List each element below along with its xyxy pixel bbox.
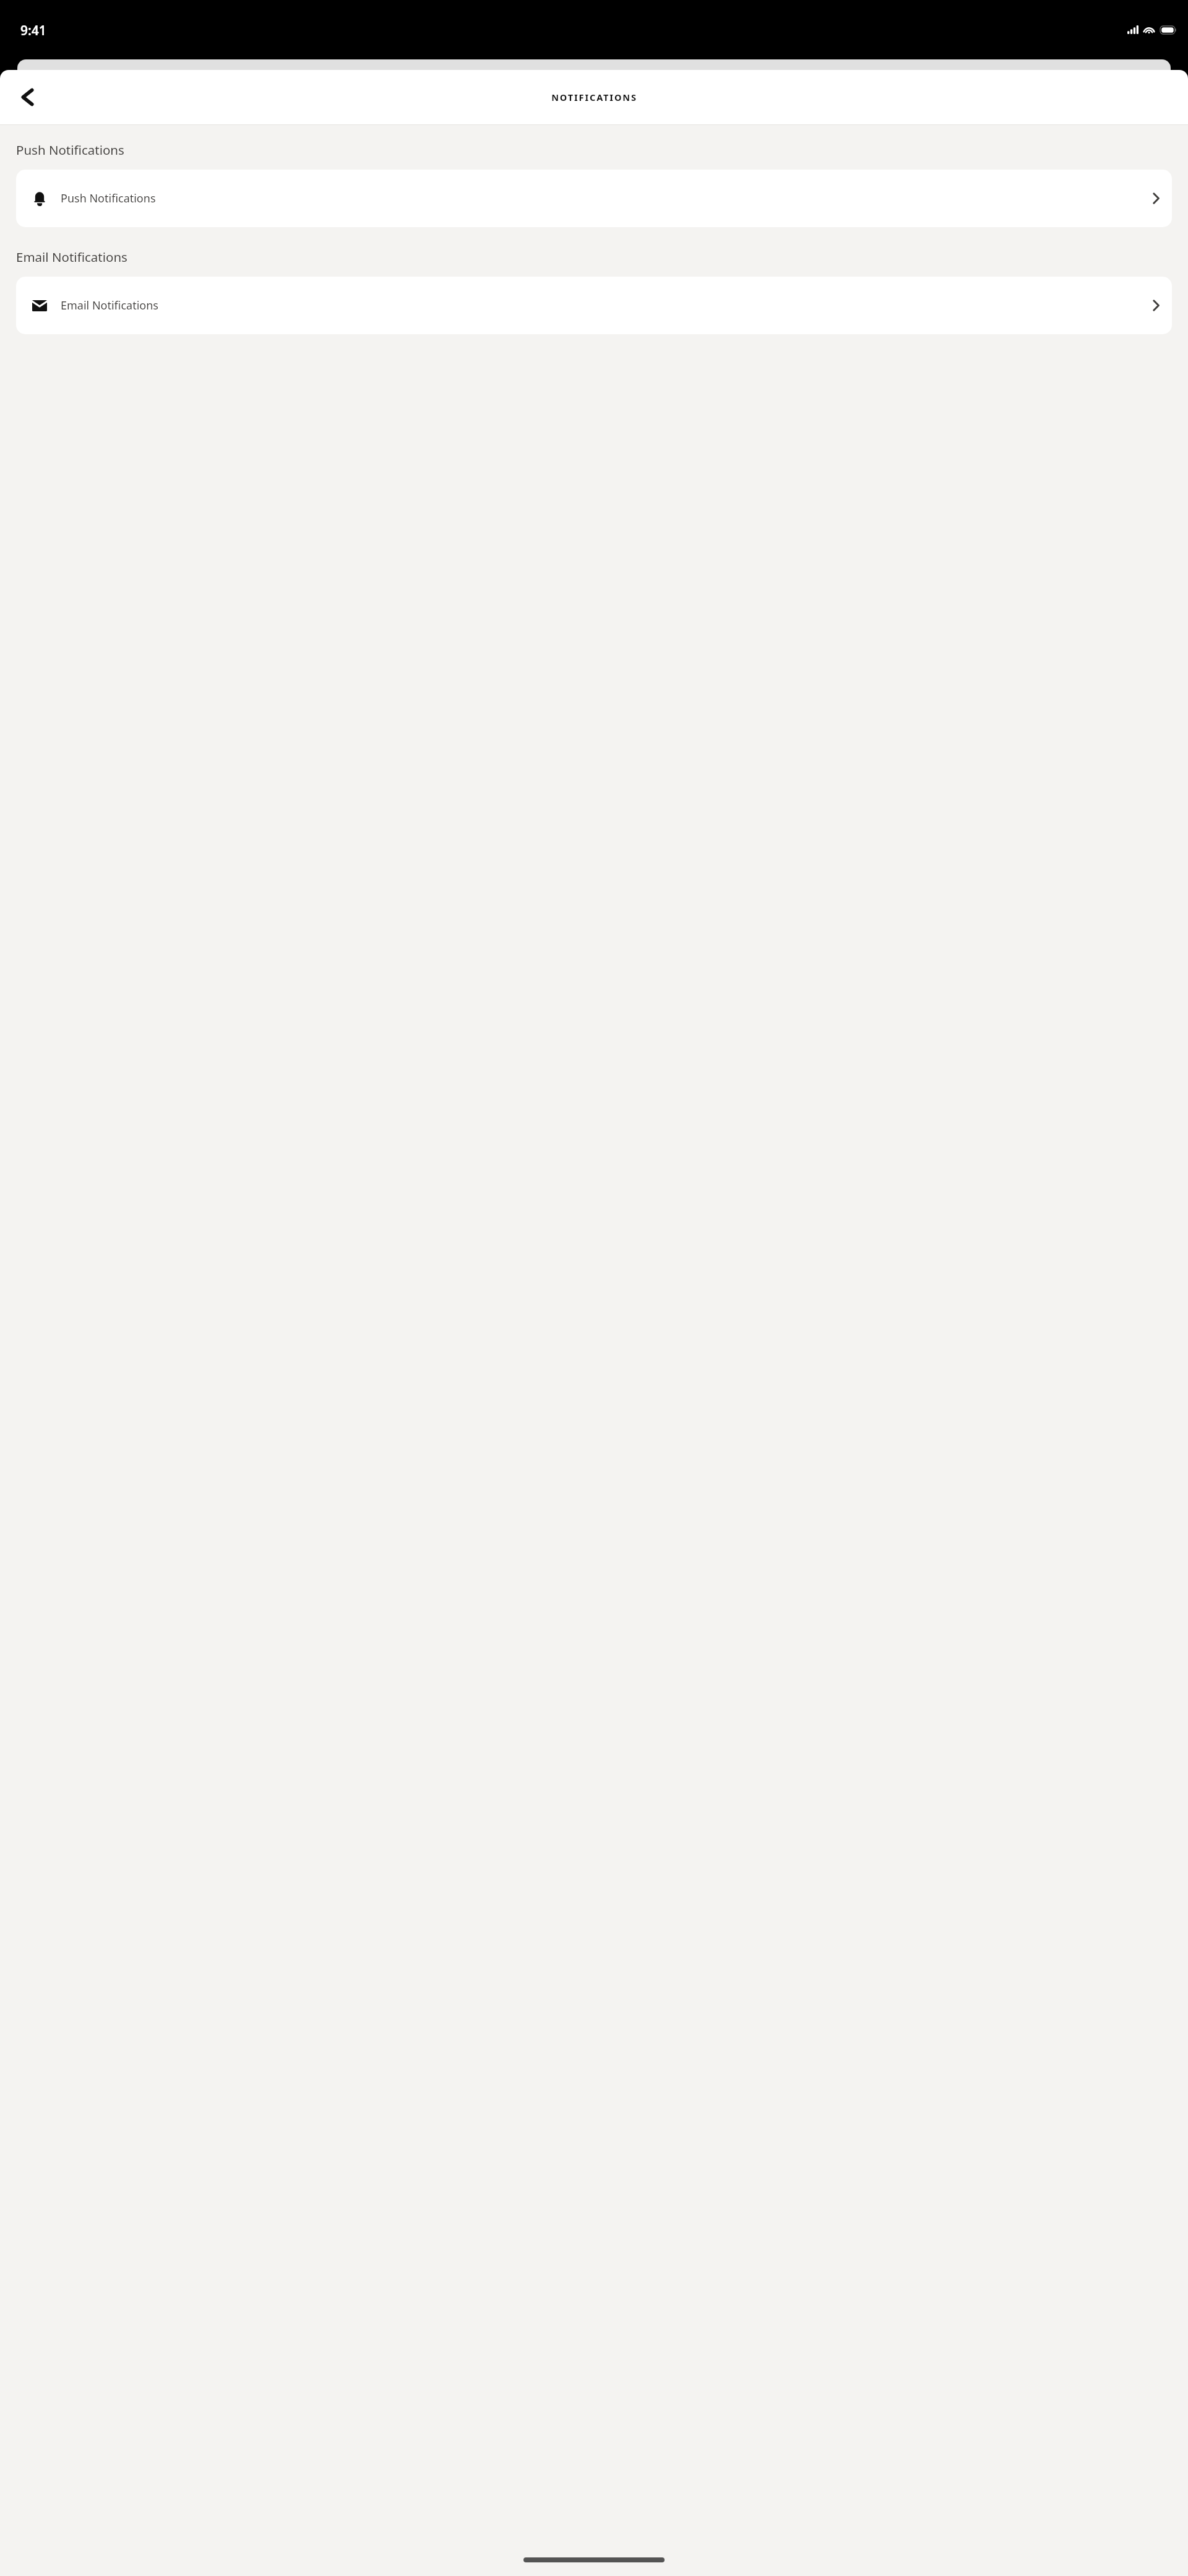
- button[interactable]: Push Notifications: [16, 170, 1172, 227]
- staticText: Email Notifications: [61, 298, 1153, 313]
- button[interactable]: Email Notifications: [16, 277, 1172, 334]
- staticText: Push Notifications: [61, 191, 1153, 206]
- staticText: 9:41: [20, 22, 46, 40]
- staticText: NOTIFICATIONS: [551, 91, 637, 103]
- staticText: Push Notifications: [16, 141, 124, 158]
- button[interactable]: Back: [12, 82, 42, 112]
- staticText: Email Notifications: [16, 248, 127, 266]
